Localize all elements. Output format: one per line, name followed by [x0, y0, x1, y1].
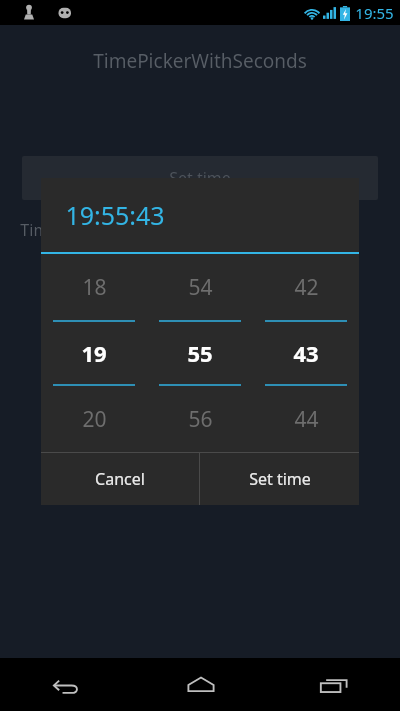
staticText: 56	[188, 405, 213, 434]
staticText: 19:55	[355, 3, 394, 23]
staticText: 42	[294, 273, 319, 302]
button[interactable]: Home	[134, 658, 267, 711]
staticText: 20	[82, 405, 107, 434]
button[interactable]: Set time	[200, 453, 359, 505]
button[interactable]: 54	[147, 254, 253, 452]
staticText: Set time	[249, 468, 311, 490]
staticText: Cancel	[95, 468, 145, 490]
button[interactable]: 18	[41, 254, 147, 452]
staticText: Set time	[169, 167, 231, 189]
staticText: 55	[187, 338, 213, 368]
staticText: 54	[188, 273, 213, 302]
staticText: 19	[81, 338, 107, 368]
staticText: 19:55:43	[65, 198, 165, 232]
button[interactable]: Set time	[22, 156, 378, 200]
button[interactable]: Cancel	[41, 453, 199, 505]
staticText: Time:	[20, 219, 62, 241]
staticText: 44	[294, 405, 319, 434]
button[interactable]: Recent apps	[267, 658, 400, 711]
staticText: 43	[293, 338, 319, 368]
staticText: TimePickerWithSeconds	[93, 48, 307, 74]
staticText: 18	[82, 273, 107, 302]
button[interactable]: Back	[0, 658, 134, 711]
button[interactable]: 42	[253, 254, 359, 452]
